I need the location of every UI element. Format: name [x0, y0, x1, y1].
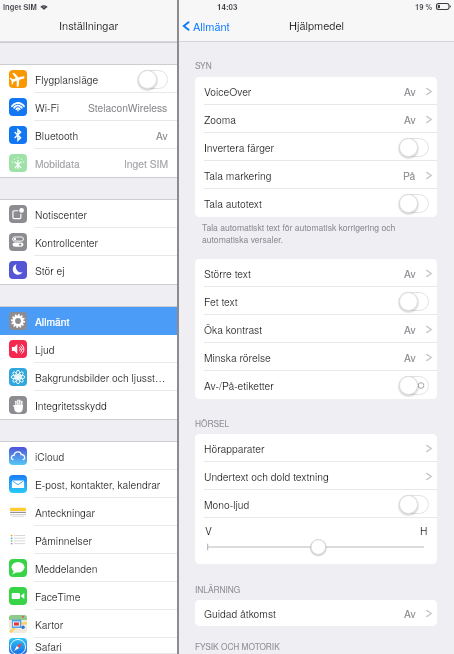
staticText: Inget SIM: [124, 156, 168, 171]
button[interactable]: iCloud: [0, 442, 177, 470]
staticText: Av: [404, 112, 416, 127]
staticText: Wi-Fi: [35, 100, 60, 115]
staticText: INLÄRNING: [195, 583, 241, 595]
button[interactable]: Av-/På-etiketter: [195, 371, 437, 399]
staticText: Anteckningar: [35, 505, 95, 520]
staticText: Guidad åtkomst: [204, 606, 276, 621]
staticText: Av-/På-etiketter: [204, 378, 274, 393]
staticText: Av: [404, 350, 416, 365]
button[interactable]: Hörapparater: [195, 434, 437, 462]
button[interactable]: Bluetooth: [0, 121, 177, 149]
staticText: H: [420, 523, 428, 538]
button[interactable]: Mono-ljud: [195, 490, 437, 518]
button[interactable]: Kartor: [0, 610, 177, 638]
staticText: Bluetooth: [35, 128, 79, 143]
button[interactable]: Bakgrundsbilder och ljusst…: [0, 363, 177, 391]
staticText: Kontrollcenter: [35, 235, 99, 250]
button[interactable]: Safari: [0, 638, 177, 654]
staticText: Inget SIM: [3, 1, 37, 12]
staticText: VoiceOver: [204, 84, 252, 99]
staticText: Minska rörelse: [204, 350, 271, 365]
staticText: Meddelanden: [35, 561, 98, 576]
staticText: E-post, kontakter, kalendrar: [35, 477, 161, 492]
staticText: Stör ej: [35, 263, 65, 278]
button[interactable]: Anteckningar: [0, 498, 177, 526]
staticText: Kartor: [35, 617, 64, 632]
staticText: Allmänt: [35, 314, 70, 329]
staticText: Inställningar: [59, 17, 119, 33]
staticText: Notiscenter: [35, 207, 87, 222]
staticText: Av: [404, 84, 416, 99]
button[interactable]: Allmänt: [0, 307, 177, 335]
button[interactable]: Back: [182, 18, 230, 34]
button[interactable]: Meddelanden: [0, 554, 177, 582]
staticText: Av: [404, 322, 416, 337]
button[interactable]: Wi-Fi: [0, 93, 177, 121]
button[interactable]: Större text: [195, 259, 437, 287]
button[interactable]: Ljud: [0, 335, 177, 363]
staticText: Tala autotext: [204, 196, 262, 211]
button[interactable]: Tala markering: [195, 161, 437, 189]
staticText: Hörapparater: [204, 441, 265, 456]
staticText: Undertext och dold textning: [204, 469, 329, 484]
button[interactable]: VoiceOver: [195, 77, 437, 105]
staticText: Integritetsskydd: [35, 398, 107, 413]
staticText: Allmänt: [193, 18, 230, 34]
staticText: Safari: [35, 639, 62, 654]
other: Back: [182, 20, 190, 32]
staticText: Påminnelser: [35, 533, 92, 548]
button[interactable]: Fet text: [195, 287, 437, 315]
button[interactable]: Minska rörelse: [195, 343, 437, 371]
button[interactable]: Stör ej: [0, 256, 177, 284]
staticText: Flygplansläge: [35, 72, 99, 87]
staticText: StelaconWireless: [88, 100, 168, 115]
button[interactable]: Guidad åtkomst: [195, 600, 437, 626]
staticText: 19 %: [415, 1, 433, 12]
staticText: 14:03: [217, 1, 238, 12]
button[interactable]: Zooma: [195, 105, 437, 133]
button[interactable]: Notiscenter: [0, 200, 177, 228]
staticText: FaceTime: [35, 589, 81, 604]
button[interactable]: Integritetsskydd: [0, 391, 177, 419]
button[interactable]: Mobildata: [0, 149, 177, 177]
button[interactable]: E-post, kontakter, kalendrar: [0, 470, 177, 498]
staticText: Bakgrundsbilder och ljusst…: [35, 370, 166, 385]
staticText: V: [205, 523, 212, 538]
staticText: Av: [156, 128, 168, 143]
button[interactable]: Flygplansläge: [0, 65, 177, 93]
button[interactable]: Undertext och dold textning: [195, 462, 437, 490]
staticText: Tala automatiskt text för automatisk kor…: [202, 221, 396, 246]
staticText: Av: [404, 606, 416, 621]
staticText: Fet text: [204, 294, 238, 309]
button[interactable]: Öka kontrast: [195, 315, 437, 343]
button[interactable]: Påminnelser: [0, 526, 177, 554]
staticText: Hjälpmedel: [289, 17, 345, 33]
staticText: Invertera färger: [204, 140, 275, 155]
staticText: På: [403, 168, 416, 183]
staticText: Mono-ljud: [204, 497, 250, 512]
staticText: Större text: [204, 266, 251, 281]
staticText: Öka kontrast: [204, 322, 263, 337]
staticText: FYSIK OCH MOTORIK: [195, 640, 280, 652]
staticText: iCloud: [35, 449, 65, 464]
button[interactable]: Tala autotext: [195, 189, 437, 217]
staticText: SYN: [195, 59, 212, 71]
staticText: Tala markering: [204, 168, 272, 183]
staticText: Ljud: [35, 342, 55, 357]
button[interactable]: FaceTime: [0, 582, 177, 610]
button[interactable]: Invertera färger: [195, 133, 437, 161]
staticText: Zooma: [204, 112, 237, 127]
staticText: Av: [404, 266, 416, 281]
staticText: HÖRSEL: [195, 417, 230, 429]
button[interactable]: Kontrollcenter: [0, 228, 177, 256]
staticText: Mobildata: [35, 156, 80, 171]
